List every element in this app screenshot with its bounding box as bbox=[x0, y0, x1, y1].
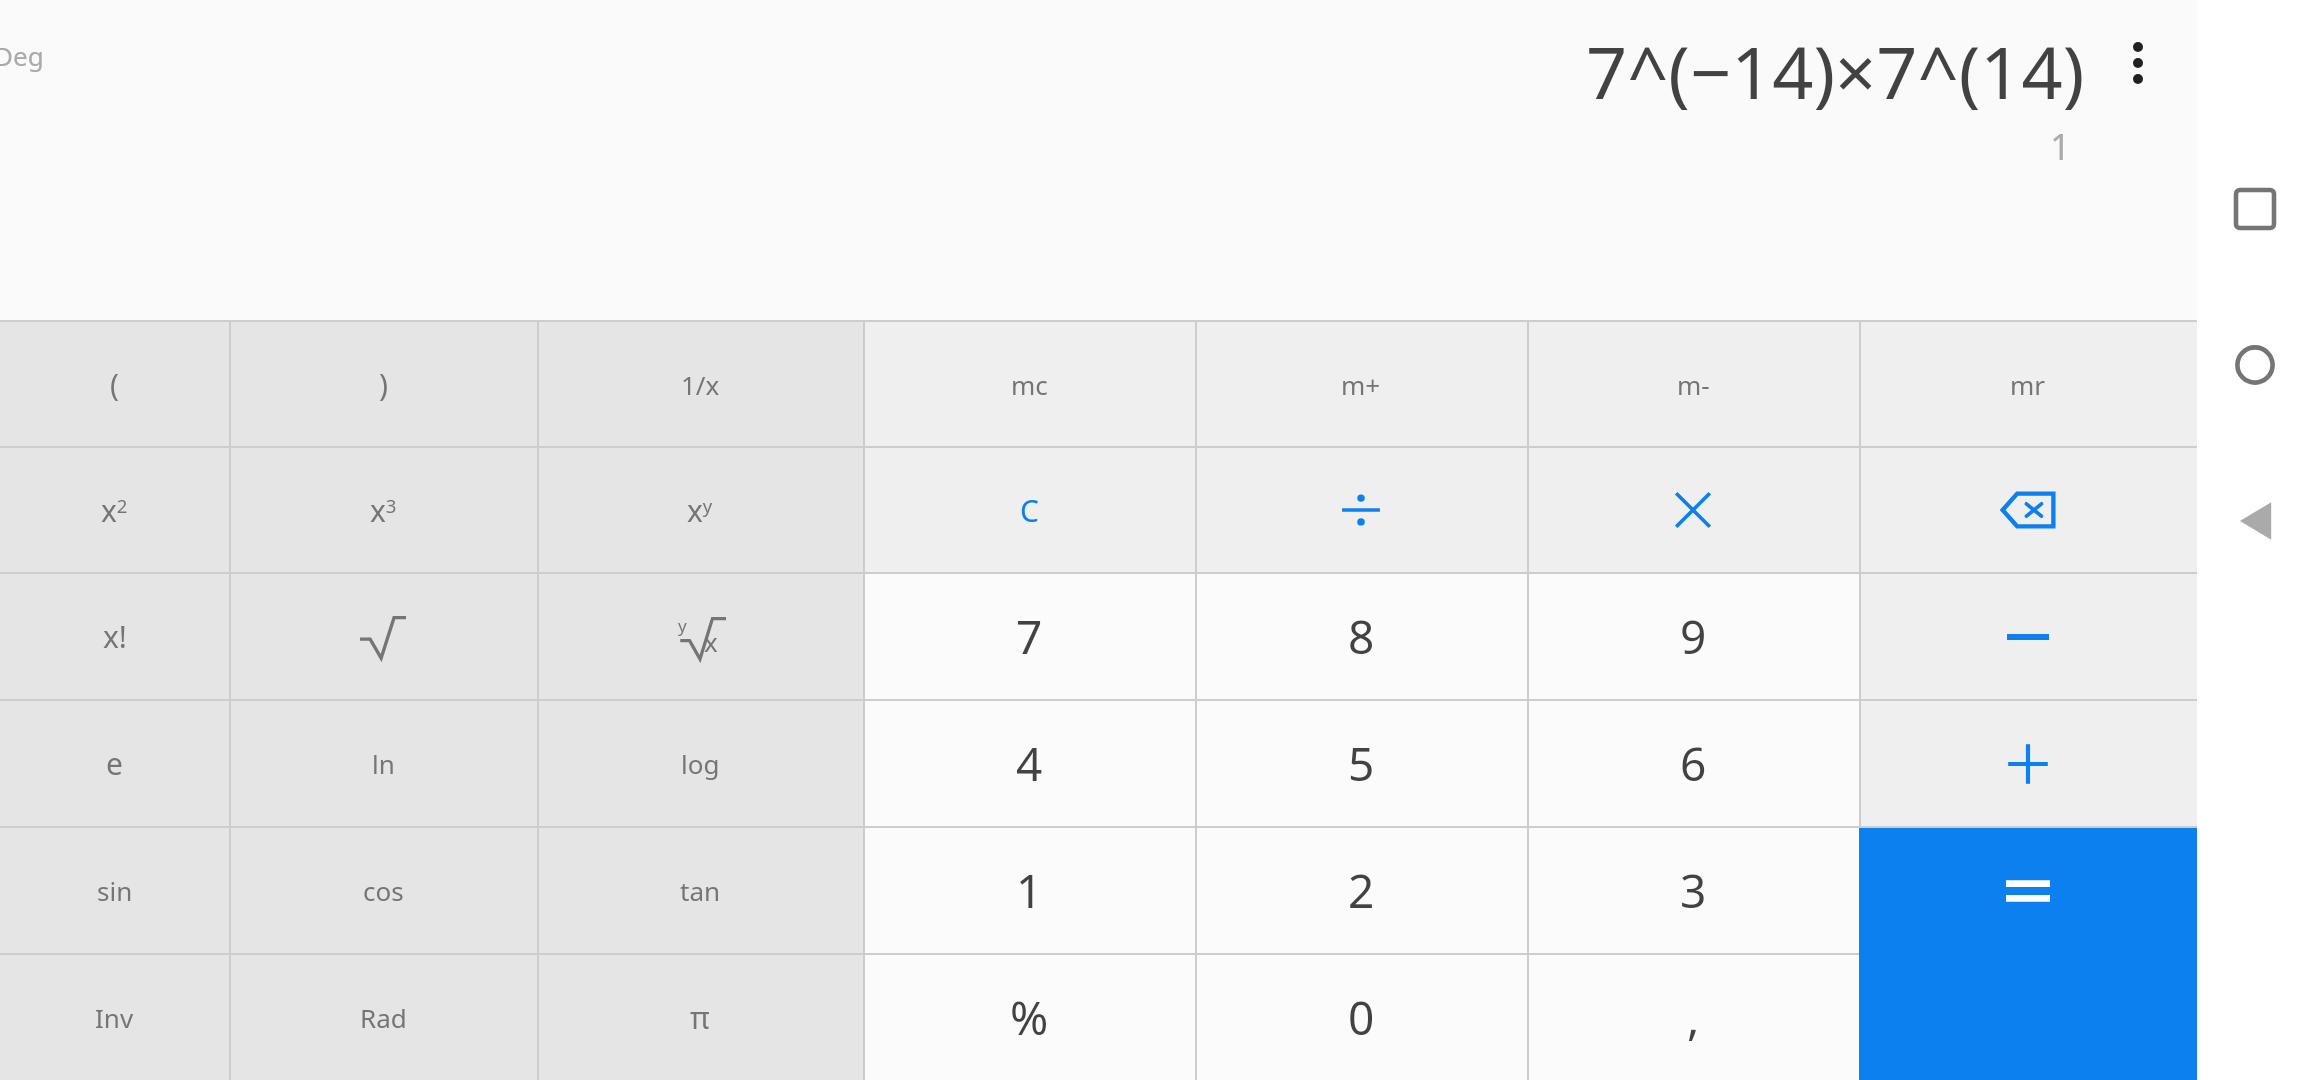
staticText: 4 bbox=[1016, 732, 1043, 795]
staticText: 6 bbox=[1680, 732, 1707, 795]
button[interactable]: 3 bbox=[1527, 828, 1859, 953]
button[interactable]: 1 bbox=[863, 828, 1195, 953]
staticText: C bbox=[1020, 490, 1039, 531]
button[interactable]: Multiply bbox=[1527, 448, 1859, 572]
staticText: Deg bbox=[0, 38, 44, 73]
button[interactable]: 5 bbox=[1195, 701, 1527, 826]
staticText: 2 bbox=[1348, 859, 1375, 922]
staticText: ( bbox=[110, 364, 119, 405]
staticText: cos bbox=[363, 873, 404, 908]
button[interactable]: 1/x bbox=[537, 322, 863, 446]
staticText: x bbox=[704, 624, 718, 659]
button[interactable]: Inv bbox=[0, 955, 229, 1080]
button[interactable]: Home bbox=[2218, 328, 2292, 402]
button[interactable]: 2 bbox=[1195, 828, 1527, 953]
staticText: mc bbox=[1011, 367, 1048, 402]
staticText: 1 bbox=[2050, 122, 2071, 171]
button[interactable]: Sqrt bbox=[229, 574, 537, 699]
button[interactable]: mc bbox=[863, 322, 1195, 446]
staticText: 1 bbox=[1016, 859, 1043, 922]
staticText: m+ bbox=[1341, 367, 1381, 402]
staticText: 7^(−14)×7^(14) bbox=[1586, 22, 2085, 120]
staticText: ) bbox=[379, 364, 388, 405]
staticText: , bbox=[1687, 986, 1700, 1049]
staticText: 3 bbox=[1680, 859, 1707, 922]
button[interactable]: , bbox=[1527, 955, 1859, 1080]
staticText: 7 bbox=[1016, 605, 1043, 668]
button[interactable]: e bbox=[0, 701, 229, 826]
button[interactable]: 0 bbox=[1195, 955, 1527, 1080]
button[interactable]: % bbox=[863, 955, 1195, 1080]
staticText: x! bbox=[103, 616, 127, 657]
button[interactable]: Plus bbox=[1859, 701, 2197, 826]
button[interactable]: m- bbox=[1527, 322, 1859, 446]
button[interactable]: 9 bbox=[1527, 574, 1859, 699]
staticText: ln bbox=[372, 746, 395, 781]
button[interactable]: More options bbox=[2101, 26, 2175, 100]
staticText: xy bbox=[687, 490, 713, 531]
staticText: tan bbox=[680, 873, 721, 908]
staticText: m- bbox=[1677, 367, 1710, 402]
button[interactable]: cos bbox=[229, 828, 537, 953]
staticText: Inv bbox=[95, 1000, 134, 1035]
staticText: 0 bbox=[1348, 986, 1375, 1049]
staticText: x3 bbox=[370, 490, 397, 531]
button[interactable]: Back bbox=[2218, 484, 2292, 558]
button[interactable]: x2 bbox=[0, 448, 229, 572]
button[interactable]: 7 bbox=[863, 574, 1195, 699]
button[interactable]: π bbox=[537, 955, 863, 1080]
button[interactable]: NthRoot bbox=[537, 574, 863, 699]
button[interactable]: 6 bbox=[1527, 701, 1859, 826]
button[interactable]: log bbox=[537, 701, 863, 826]
button[interactable]: tan bbox=[537, 828, 863, 953]
staticText: y bbox=[678, 614, 687, 637]
staticText: 8 bbox=[1348, 605, 1375, 668]
staticText: e bbox=[106, 743, 123, 784]
button[interactable]: x! bbox=[0, 574, 229, 699]
staticText: % bbox=[1010, 986, 1049, 1049]
button[interactable]: Minus bbox=[1859, 574, 2197, 699]
button[interactable]: Equals bbox=[1859, 828, 2197, 953]
button[interactable]: 4 bbox=[863, 701, 1195, 826]
staticText: log bbox=[681, 746, 720, 781]
button[interactable]: ) bbox=[229, 322, 537, 446]
button[interactable]: Backspace bbox=[1859, 448, 2197, 572]
button[interactable]: m+ bbox=[1195, 322, 1527, 446]
button[interactable]: Recents bbox=[2218, 172, 2292, 246]
staticText: π bbox=[690, 997, 710, 1038]
button[interactable]: xy bbox=[537, 448, 863, 572]
staticText: 9 bbox=[1680, 605, 1707, 668]
button[interactable]: 8 bbox=[1195, 574, 1527, 699]
staticText: mr bbox=[2010, 367, 2046, 402]
button[interactable]: Divide bbox=[1195, 448, 1527, 572]
staticText: 5 bbox=[1348, 732, 1375, 795]
button[interactable]: C bbox=[863, 448, 1195, 572]
staticText: x2 bbox=[101, 490, 128, 531]
staticText: Rad bbox=[360, 1000, 407, 1035]
button[interactable]: ( bbox=[0, 322, 229, 446]
staticText: 1/x bbox=[681, 367, 720, 402]
button[interactable]: Rad bbox=[229, 955, 537, 1080]
button[interactable]: sin bbox=[0, 828, 229, 953]
staticText: sin bbox=[97, 873, 133, 908]
button[interactable]: x3 bbox=[229, 448, 537, 572]
button[interactable]: ln bbox=[229, 701, 537, 826]
button[interactable]: mr bbox=[1859, 322, 2197, 446]
